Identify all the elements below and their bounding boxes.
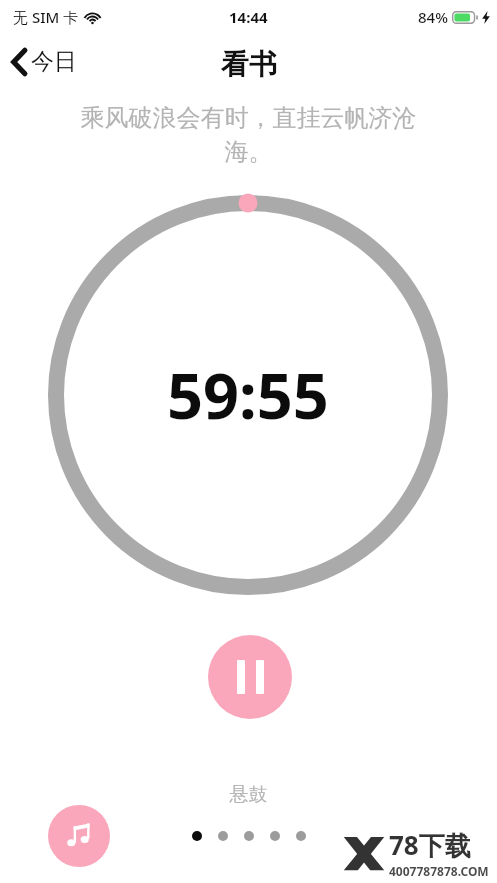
staticText: 14:44	[229, 7, 268, 27]
button[interactable]: 今日	[0, 41, 89, 82]
staticText: 59:55	[167, 352, 329, 438]
button[interactable]: Background music	[48, 805, 110, 867]
staticText: 4007787878.COM	[389, 863, 489, 879]
staticText: 乘风破浪会有时，直挂云帆济沧海。	[62, 103, 435, 168]
staticText: 78下载	[389, 827, 471, 863]
button[interactable]: Pause timer	[208, 635, 292, 719]
staticText: 悬鼓	[0, 783, 497, 807]
staticText: 看书	[221, 47, 277, 82]
staticText: 今日	[31, 47, 77, 76]
staticText: 无 SIM 卡	[13, 7, 79, 27]
staticText: 84%	[418, 7, 448, 27]
